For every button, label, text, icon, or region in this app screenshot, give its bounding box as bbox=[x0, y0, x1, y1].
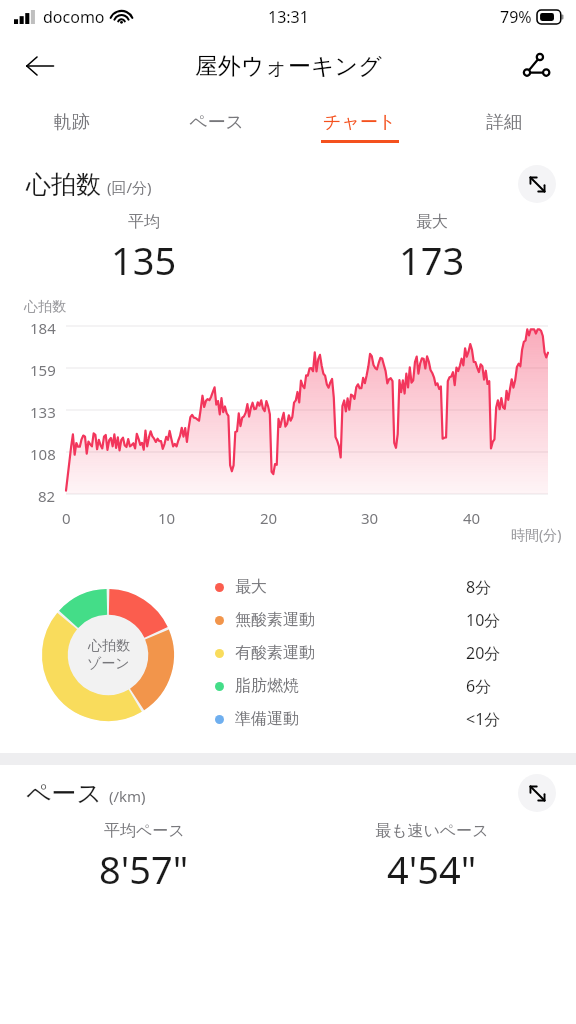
staticText: 108 bbox=[30, 444, 56, 464]
staticText: 30 bbox=[361, 508, 379, 528]
staticText: 135 bbox=[111, 234, 177, 286]
staticText: 173 bbox=[399, 234, 465, 286]
staticText: ゾーン bbox=[87, 655, 130, 673]
staticText: 0 bbox=[62, 508, 71, 528]
staticText: 82 bbox=[38, 486, 56, 506]
staticText: 屋外ウォーキング bbox=[195, 52, 382, 81]
staticText: ペース bbox=[26, 778, 103, 809]
staticText: 最も速いペース bbox=[375, 821, 489, 841]
staticText: 8'57" bbox=[99, 843, 189, 895]
staticText: 心拍数 bbox=[88, 637, 130, 655]
staticText: 詳細 bbox=[486, 111, 522, 134]
staticText: 20 bbox=[260, 508, 278, 528]
staticText: チャート bbox=[323, 111, 397, 134]
staticText: 4'54" bbox=[387, 843, 477, 895]
staticText: 40 bbox=[463, 508, 481, 528]
staticText: 133 bbox=[30, 402, 56, 422]
staticText: 準備運動 bbox=[235, 709, 299, 729]
staticText: docomo bbox=[43, 6, 105, 28]
staticText: 20分 bbox=[466, 642, 576, 664]
staticText: 軌跡 bbox=[54, 111, 90, 134]
staticText: 心拍数 bbox=[26, 169, 101, 200]
staticText: 13:31 bbox=[268, 6, 309, 28]
staticText: 10分 bbox=[466, 609, 576, 631]
button[interactable]: Expand bbox=[518, 165, 556, 203]
staticText: 8分 bbox=[466, 576, 576, 598]
staticText: (/km) bbox=[109, 786, 146, 806]
staticText: 最大 bbox=[235, 577, 267, 597]
button[interactable]: 詳細 bbox=[432, 98, 576, 156]
button[interactable]: Back bbox=[14, 40, 66, 92]
button[interactable]: チャート bbox=[288, 98, 432, 156]
staticText: 有酸素運動 bbox=[235, 643, 315, 663]
staticText: 無酸素運動 bbox=[235, 610, 315, 630]
staticText: 脂肪燃焼 bbox=[235, 676, 299, 696]
staticText: 6分 bbox=[466, 675, 576, 697]
staticText: ペース bbox=[189, 111, 244, 134]
staticText: 平均 bbox=[128, 212, 160, 232]
staticText: 10 bbox=[158, 508, 176, 528]
staticText: 159 bbox=[30, 360, 56, 380]
staticText: 時間(分) bbox=[511, 525, 562, 544]
staticText: 心拍数 bbox=[24, 298, 66, 316]
staticText: (回/分) bbox=[107, 177, 152, 197]
staticText: 平均ペース bbox=[104, 821, 185, 841]
staticText: 最大 bbox=[416, 212, 448, 232]
button[interactable]: 軌跡 bbox=[0, 98, 144, 156]
button[interactable]: Route bbox=[510, 40, 562, 92]
staticText: <1分 bbox=[466, 708, 576, 730]
button[interactable]: ペース bbox=[144, 98, 288, 156]
button[interactable]: Expand bbox=[518, 774, 556, 812]
staticText: 184 bbox=[30, 318, 56, 338]
staticText: 79% bbox=[500, 6, 532, 28]
